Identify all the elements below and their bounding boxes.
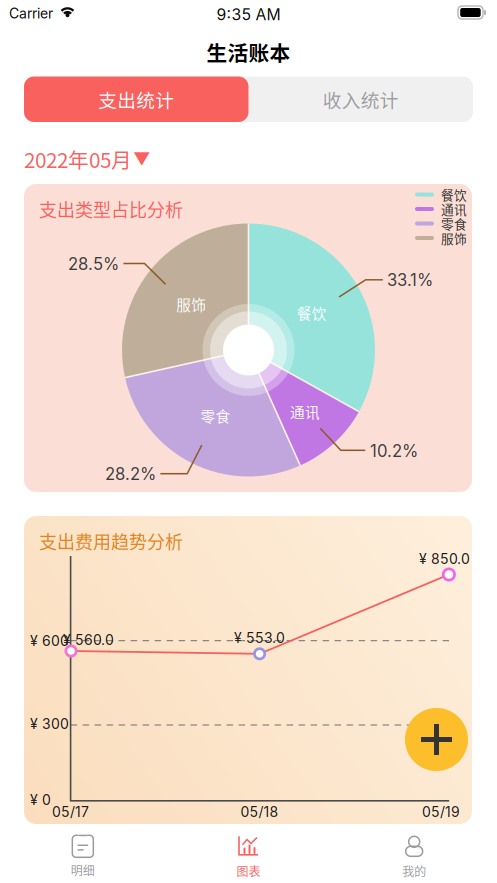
staticText: ¥ 300	[30, 715, 69, 732]
staticText: 餐饮	[297, 302, 327, 323]
staticText: ¥ 560.0	[63, 631, 114, 648]
staticText: 2022年05月	[24, 144, 132, 174]
staticText: ¥ 0	[30, 791, 51, 808]
staticText: 我的	[402, 862, 426, 880]
button[interactable]: Add record	[405, 708, 468, 771]
staticText: 生活账本	[206, 37, 290, 67]
staticText: ¥ 553.0	[234, 629, 285, 646]
staticText: 通讯	[441, 200, 467, 218]
staticText: 10.2%	[370, 441, 418, 461]
button[interactable]: 图表	[166, 824, 331, 883]
staticText: 零食	[441, 214, 467, 233]
staticText: 图表	[236, 862, 260, 880]
staticText: Carrier	[9, 5, 53, 22]
staticText: 支出费用趋势分析	[39, 528, 183, 554]
button[interactable]: 2022年05月	[24, 146, 154, 172]
staticText: 28.5%	[68, 254, 119, 274]
staticText: 33.1%	[387, 270, 433, 290]
staticText: ¥ 600	[30, 632, 69, 649]
staticText: 05/19	[422, 803, 460, 820]
button[interactable]: 收入统计	[248, 76, 473, 122]
staticText: 支出统计	[98, 86, 174, 113]
staticText: 05/18	[241, 803, 279, 820]
button[interactable]: 明细	[0, 825, 166, 883]
staticText: ¥ 850.0	[419, 550, 470, 567]
staticText: 28.2%	[105, 464, 156, 484]
staticText: 通讯	[290, 401, 320, 422]
staticText: 零食	[201, 405, 231, 426]
staticText: 9:35 AM	[216, 5, 280, 24]
staticText: 收入统计	[323, 86, 399, 113]
staticText: 服饰	[176, 293, 206, 315]
staticText: 明细	[71, 861, 95, 879]
staticText: 餐饮	[441, 185, 467, 204]
staticText: ▼	[133, 148, 151, 169]
staticText: 支出类型占比分析	[39, 196, 183, 222]
button[interactable]: 支出统计	[24, 76, 248, 122]
staticText: 服饰	[441, 229, 467, 247]
staticText: 05/17	[52, 803, 89, 820]
button[interactable]: 我的	[331, 824, 497, 883]
